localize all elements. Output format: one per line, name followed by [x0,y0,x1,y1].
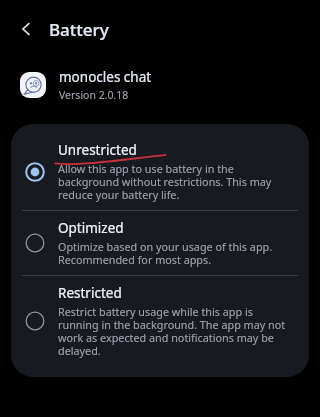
staticText: Restrict battery usage while this app is… [58,304,286,358]
staticText: Unrestricted [58,141,137,159]
button[interactable]: Restricted [11,276,309,366]
staticText: Allow this app to use battery in the bac… [58,161,272,202]
staticText: Restricted [58,284,122,302]
button[interactable]: Unrestricted [11,133,309,210]
staticText: Battery [49,18,109,41]
button[interactable]: Back [14,17,38,41]
staticText: Optimize based on your usage of this app… [58,239,273,267]
staticText: Version 2.0.18 [59,88,129,102]
staticText: monocles chat [59,68,152,86]
staticText: Optimized [58,219,124,237]
button[interactable]: Optimized [11,211,309,275]
